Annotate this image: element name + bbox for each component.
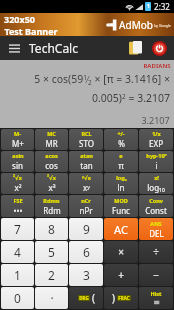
- button[interactable]: 6: [69, 241, 103, 263]
- staticText: atan: [80, 152, 93, 159]
- staticText: STO: [79, 138, 94, 149]
- button[interactable]: atan: [69, 151, 103, 172]
- button[interactable]: Rdmɴ: [35, 195, 68, 217]
- staticText: nCr: [81, 197, 91, 204]
- staticText: asin: [12, 152, 24, 159]
- staticText: MOD: [114, 197, 128, 204]
- staticText: +/-: [117, 130, 125, 137]
- staticText: x!: [154, 174, 159, 181]
- button[interactable]: Notes: [125, 38, 145, 58]
- staticText: ³√x: [47, 174, 56, 181]
- button[interactable]: 4: [1, 241, 34, 263]
- button[interactable]: ÷: [139, 241, 173, 263]
- button[interactable]: ²√x: [1, 173, 34, 194]
- staticText: DEL: [149, 228, 164, 239]
- button[interactable]: ×: [104, 241, 138, 263]
- staticText: 0.005)2 = 3.2107: [91, 91, 170, 105]
- staticText: ≡: [153, 298, 160, 307]
- staticText: ·: [50, 290, 54, 306]
- staticText: 3: [83, 267, 90, 283]
- staticText: DRG: [79, 295, 89, 301]
- button[interactable]: AC: [104, 218, 138, 240]
- button[interactable]: Menu: [5, 39, 23, 57]
- staticText: acos: [45, 152, 58, 159]
- staticText: MC: [47, 130, 56, 137]
- button[interactable]: 9: [69, 218, 103, 240]
- staticText: Test Banner: [4, 25, 58, 36]
- staticText: 2: [48, 267, 55, 283]
- button[interactable]: 1/x: [139, 129, 173, 150]
- button[interactable]: 2: [35, 264, 68, 286]
- staticText: M-: [14, 130, 21, 137]
- staticText: Conv: [149, 197, 163, 204]
- staticText: log₁₀: [147, 182, 165, 193]
- button[interactable]: MC: [35, 129, 68, 150]
- staticText: 4: [14, 244, 21, 260]
- button[interactable]: 5: [35, 241, 68, 263]
- button[interactable]: log₂: [104, 173, 138, 194]
- button[interactable]: 0: [1, 287, 34, 309]
- staticText: 5 × cos(591⁄2 × [π = 3.1416] ×: [34, 72, 170, 87]
- button[interactable]: e: [104, 151, 138, 172]
- staticText: sin: [12, 160, 23, 171]
- staticText: (: [92, 291, 95, 305]
- button[interactable]: Exit: [149, 38, 169, 58]
- button[interactable]: 3: [69, 264, 103, 286]
- staticText: Hist: [150, 290, 162, 297]
- staticText: 5: [48, 244, 55, 260]
- staticText: 1: [147, 3, 150, 10]
- button[interactable]: 8: [35, 218, 68, 240]
- staticText: 1: [14, 267, 21, 283]
- button[interactable]: +: [104, 264, 138, 286]
- staticText: x²: [14, 182, 22, 193]
- button[interactable]: acos: [35, 151, 68, 172]
- staticText: ln: [117, 182, 125, 193]
- staticText: 3.2107: [141, 114, 170, 126]
- staticText: xʸ: [83, 182, 90, 193]
- button[interactable]: FSE: [1, 195, 34, 217]
- button[interactable]: DRG: [69, 287, 103, 309]
- staticText: %: [118, 138, 125, 149]
- button[interactable]: x!: [139, 173, 173, 194]
- staticText: 9: [83, 221, 90, 237]
- staticText: Const: [145, 205, 167, 216]
- staticText: ²√x: [13, 174, 22, 181]
- staticText: cos: [45, 160, 58, 171]
- button[interactable]: ³√x: [35, 173, 68, 194]
- staticText: 2:32: [154, 1, 170, 12]
- button[interactable]: M-: [1, 129, 34, 150]
- staticText: i: [155, 160, 158, 171]
- staticText: ×: [118, 245, 124, 259]
- staticText: nPr: [79, 205, 93, 216]
- staticText: 0: [14, 290, 21, 306]
- staticText: •••: [13, 205, 23, 216]
- button[interactable]: ): [104, 287, 138, 309]
- button[interactable]: +/-: [104, 129, 138, 150]
- staticText: Rdm: [43, 205, 61, 216]
- staticText: AdMob: [119, 18, 153, 32]
- button[interactable]: 7: [1, 218, 34, 240]
- staticText: Rdmɴ: [43, 197, 60, 204]
- staticText: 8: [48, 221, 55, 237]
- button[interactable]: ʸ√x: [69, 173, 103, 194]
- button[interactable]: 1: [1, 264, 34, 286]
- staticText: e: [119, 152, 123, 159]
- button[interactable]: ANS: [139, 218, 173, 240]
- button[interactable]: −: [139, 264, 173, 286]
- staticText: 7: [14, 221, 21, 237]
- staticText: RADIANS: [143, 62, 171, 70]
- staticText: MR: [45, 138, 58, 149]
- button[interactable]: ·: [35, 287, 68, 309]
- button[interactable]: Conv: [139, 195, 173, 217]
- button[interactable]: Hist: [139, 287, 173, 309]
- button[interactable]: asin: [1, 151, 34, 172]
- staticText: M+: [12, 138, 24, 149]
- staticText: 6: [83, 244, 90, 260]
- button[interactable]: MOD: [104, 195, 138, 217]
- staticText: ÷: [153, 245, 159, 259]
- button[interactable]: RCL: [69, 129, 103, 150]
- staticText: −: [153, 268, 159, 282]
- button[interactable]: hyp-10ˣ: [139, 151, 173, 172]
- button[interactable]: nCr: [69, 195, 103, 217]
- staticText: AC: [114, 222, 128, 237]
